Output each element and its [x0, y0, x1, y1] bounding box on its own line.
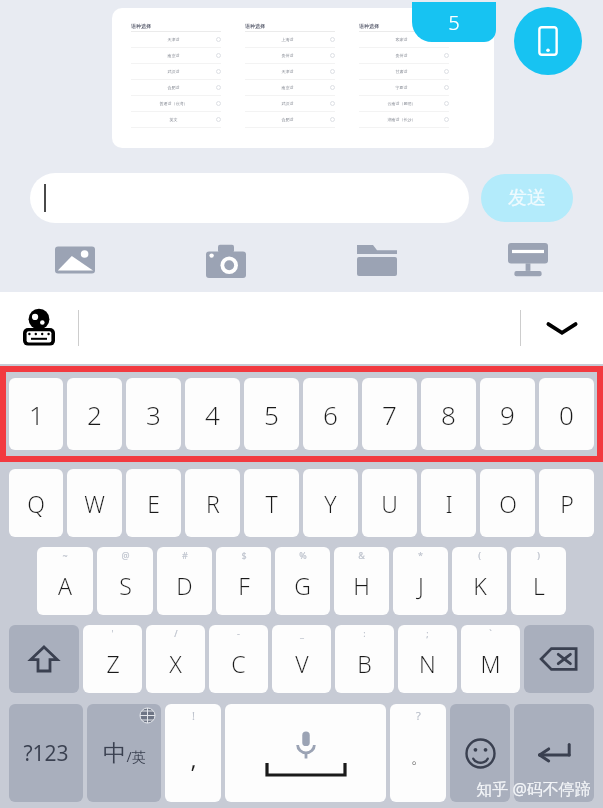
button[interactable]: Shift [9, 625, 79, 693]
button[interactable]: Files [301, 228, 452, 292]
button[interactable]: Camera [150, 228, 301, 292]
button[interactable]: 发送 [481, 174, 573, 222]
button[interactable]: O [480, 469, 535, 537]
button[interactable]: ) [511, 547, 566, 615]
button[interactable]: ; [398, 625, 457, 693]
staticText: 8 [441, 397, 456, 432]
staticText: & [358, 549, 365, 561]
staticText: 3 [146, 397, 161, 432]
staticText: 合肥话 [245, 117, 330, 122]
button[interactable]: W [67, 469, 122, 537]
button[interactable]: 4 [185, 378, 240, 450]
staticText: _ [300, 627, 304, 639]
button[interactable] [30, 173, 469, 223]
staticText: N [419, 648, 436, 679]
button[interactable]: 语种选择 [112, 8, 494, 148]
button[interactable]: 5 [244, 378, 299, 450]
staticText: 天津话 [245, 69, 330, 74]
staticText: 中 [103, 739, 126, 768]
staticText: O [499, 488, 517, 519]
staticText: 语种选择 [131, 23, 151, 29]
staticText: 。 [411, 749, 426, 768]
staticText: 贵州话 [359, 53, 444, 58]
button[interactable]: - [209, 625, 268, 693]
staticText: Q [27, 488, 45, 519]
button[interactable]: 3 [126, 378, 181, 450]
button[interactable]: Hide keyboard [521, 292, 603, 364]
button[interactable]: % [275, 547, 330, 615]
button[interactable]: _ [272, 625, 331, 693]
staticText: 6 [323, 397, 338, 432]
staticText: % [299, 549, 307, 561]
staticText: C [231, 648, 246, 679]
staticText: 5 [264, 397, 279, 432]
staticText: ; [426, 627, 429, 639]
staticText: ( [478, 549, 481, 561]
button[interactable]: : [335, 625, 394, 693]
button[interactable]: P [539, 469, 594, 537]
button[interactable]: E [126, 469, 181, 537]
button[interactable]: $ [216, 547, 271, 615]
button[interactable]: Backspace [524, 625, 594, 693]
button[interactable]: ! [165, 704, 221, 802]
staticText: ? [416, 708, 421, 723]
staticText: 宁夏话 [359, 85, 444, 90]
button[interactable]: 6 [303, 378, 358, 450]
button[interactable]: T [244, 469, 299, 537]
button[interactable]: ~ [37, 547, 93, 615]
staticText: * [418, 549, 423, 561]
button[interactable]: Device [514, 7, 582, 75]
staticText: G [294, 570, 311, 601]
button[interactable]: ?123 [9, 704, 83, 802]
button[interactable]: Screen share [452, 228, 603, 292]
staticText: 贵州话 [245, 53, 330, 58]
button[interactable]: 0 [539, 378, 594, 450]
button[interactable]: @ [97, 547, 153, 615]
staticText: ` [489, 627, 492, 639]
button[interactable]: Emoji [450, 704, 510, 802]
button[interactable]: ` [461, 625, 520, 693]
staticText: D [176, 570, 193, 601]
button[interactable]: ' [83, 625, 142, 693]
button[interactable]: 1 [9, 378, 63, 450]
button[interactable]: ( [452, 547, 507, 615]
button[interactable]: Space [225, 704, 386, 802]
staticText: 4 [205, 397, 220, 432]
button[interactable]: / [146, 625, 205, 693]
button[interactable]: # [157, 547, 212, 615]
staticText: 发送 [508, 186, 546, 210]
button[interactable]: ? [390, 704, 446, 802]
staticText: ! [192, 708, 195, 723]
staticText: $ [241, 549, 247, 561]
button[interactable]: * [393, 547, 448, 615]
button[interactable]: U [362, 469, 417, 537]
staticText: 知乎 @码不停蹄 [476, 778, 591, 800]
button[interactable]: 中 [87, 704, 161, 802]
staticText: ) [537, 549, 540, 561]
staticText: 天津话 [131, 37, 216, 42]
button[interactable]: 9 [480, 378, 535, 450]
button[interactable]: R [185, 469, 240, 537]
button[interactable]: Switch input language [0, 292, 78, 364]
button[interactable]: 2 [67, 378, 122, 450]
button[interactable]: Y [303, 469, 358, 537]
button[interactable]: Enter [514, 704, 594, 802]
button[interactable]: 7 [362, 378, 417, 450]
staticText: S [119, 570, 132, 601]
staticText: T [265, 488, 278, 519]
staticText: W [84, 488, 105, 519]
staticText: 5 [448, 9, 460, 36]
staticText: 武汉话 [131, 69, 216, 74]
staticText: 0 [559, 397, 574, 432]
button[interactable]: Image [0, 228, 150, 292]
button[interactable]: & [334, 547, 389, 615]
button[interactable]: 8 [421, 378, 476, 450]
staticText: Y [324, 488, 337, 519]
staticText: 武汉话 [245, 101, 330, 106]
staticText: @ [121, 549, 130, 561]
staticText: 甘肃话 [359, 69, 444, 74]
button[interactable]: Q [9, 469, 63, 537]
staticText: H [353, 570, 370, 601]
button[interactable]: I [421, 469, 476, 537]
staticText: X [169, 648, 182, 679]
